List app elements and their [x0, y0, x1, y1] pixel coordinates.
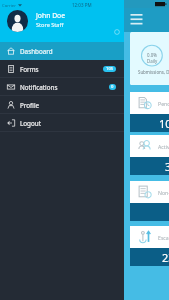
button[interactable]: Escalations	[130, 226, 169, 266]
button[interactable]: Notifications	[0, 78, 124, 96]
button[interactable]: Dashboard	[0, 42, 124, 60]
staticText: Daily	[147, 58, 158, 64]
staticText: Notifications	[20, 83, 58, 92]
staticText: 105	[106, 66, 114, 72]
button[interactable]: Pending	[130, 92, 169, 132]
button[interactable]: Forms	[0, 60, 124, 78]
staticText: 23	[162, 250, 169, 265]
button[interactable]: Settings	[114, 29, 120, 35]
button[interactable]: Non-compliant	[130, 181, 169, 221]
staticText: Non-compliant	[158, 189, 169, 196]
staticText: Carrier	[2, 2, 16, 8]
button[interactable]: Open navigation drawer	[130, 12, 143, 21]
staticText: 12:03 PM	[72, 2, 92, 8]
staticText: Logout	[20, 119, 41, 128]
staticText: Profile	[20, 101, 40, 110]
staticText: 0	[111, 84, 114, 90]
staticText: 105	[159, 116, 169, 131]
button[interactable]: Active Users	[130, 135, 169, 175]
button[interactable]: 0.0%	[130, 32, 169, 85]
staticText: 0.0%	[147, 52, 157, 58]
staticText: Store Staff	[36, 21, 64, 29]
staticText: Escalations	[158, 234, 169, 241]
button[interactable]: Profile	[0, 96, 124, 114]
staticText: John Doe	[36, 11, 66, 20]
staticText: Dashboard	[20, 47, 53, 56]
staticText: Forms	[20, 65, 39, 74]
staticText: 3	[165, 159, 169, 174]
staticText: Active Users	[158, 143, 169, 150]
button[interactable]: Logout	[0, 114, 124, 132]
staticText: Pending	[158, 100, 169, 107]
staticText: Submissions, Daily	[138, 69, 169, 75]
